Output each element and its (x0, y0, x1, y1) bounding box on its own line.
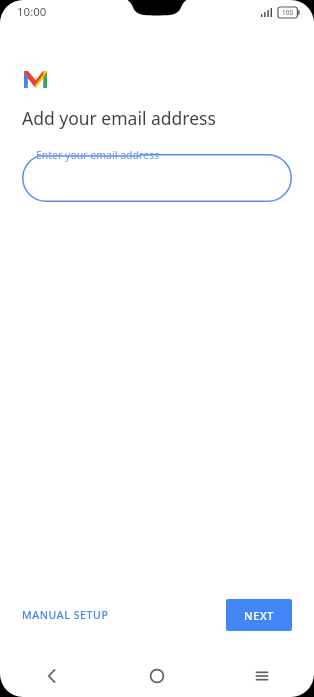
staticText: Enter your email address (36, 148, 160, 162)
staticText: NEXT (244, 608, 274, 623)
button[interactable]: MANUAL SETUP (14, 600, 117, 630)
button[interactable]: Recent apps (209, 655, 314, 697)
staticText: MANUAL SETUP (22, 608, 109, 622)
button[interactable]: NEXT (226, 599, 292, 631)
staticText: Add your email address (22, 106, 216, 130)
button[interactable]: Home (104, 655, 209, 697)
staticText: 100 (282, 8, 294, 17)
button[interactable]: Back (0, 655, 104, 697)
button[interactable] (22, 154, 292, 202)
staticText: 10:00 (17, 4, 47, 20)
